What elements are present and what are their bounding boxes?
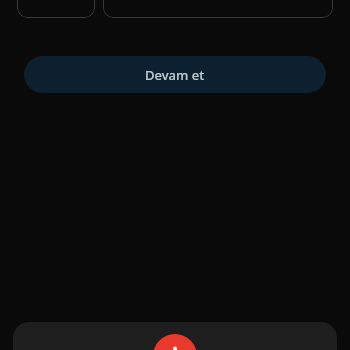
staticText: Devam et (145, 66, 205, 84)
button[interactable]: 5554445555 (103, 0, 333, 18)
button[interactable]: Devam et (24, 56, 326, 93)
other: Error (153, 334, 197, 350)
button[interactable]: +90 (17, 0, 95, 18)
